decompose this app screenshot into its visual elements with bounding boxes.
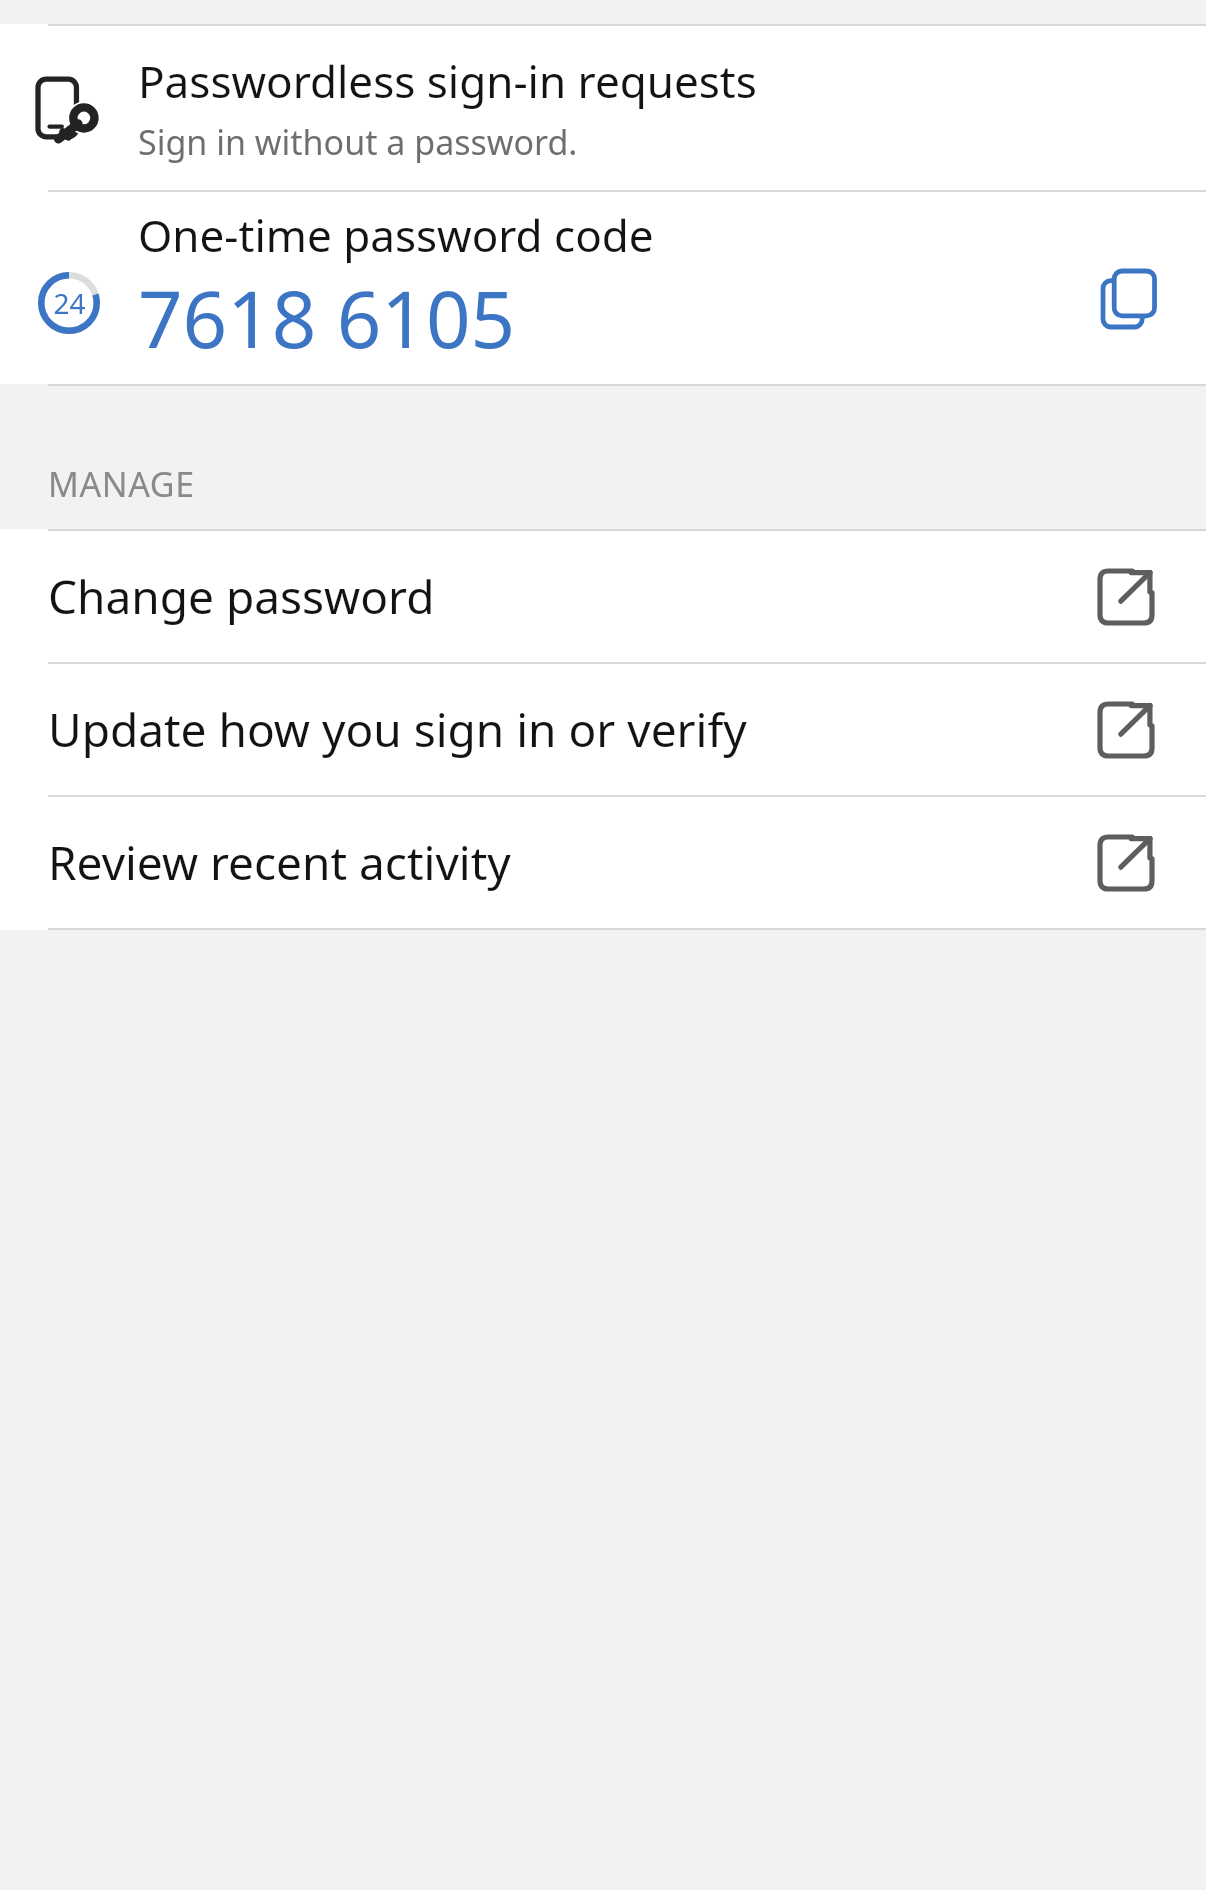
staticText: MANAGE: [48, 461, 195, 507]
button[interactable]: Review recent activity: [0, 797, 1206, 928]
staticText: Change password: [48, 565, 1022, 628]
button[interactable]: Passwordless sign-in: [0, 26, 1206, 190]
staticText: Sign in without a password.: [138, 119, 578, 165]
staticText: Passwordless sign-in requests: [138, 51, 757, 111]
other: Passwordless sign-in: [38, 77, 100, 139]
staticText: 7618 6105: [138, 265, 516, 371]
button[interactable]: 24: [0, 192, 1206, 384]
staticText: Review recent activity: [48, 831, 1022, 894]
button[interactable]: Change password: [0, 531, 1206, 662]
staticText: One-time password code: [138, 205, 654, 265]
staticText: 24: [53, 284, 86, 322]
button[interactable]: Copy code: [1056, 192, 1206, 384]
staticText: Update how you sign in or verify: [48, 698, 1022, 761]
button[interactable]: Update how you sign in or verify: [0, 664, 1206, 795]
